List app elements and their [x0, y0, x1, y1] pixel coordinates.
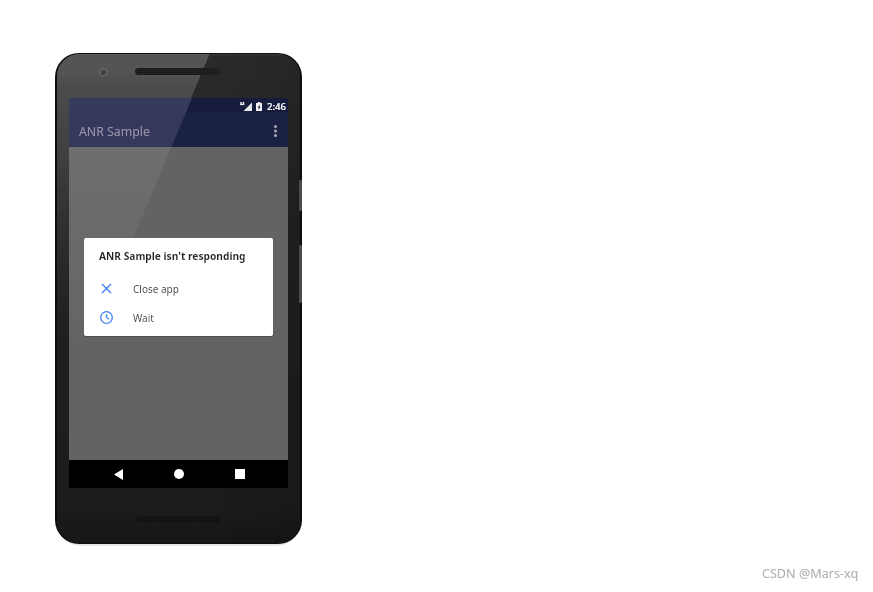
button[interactable]: Wait: [84, 303, 273, 332]
button[interactable]: Home: [161, 463, 197, 485]
staticText: Wait: [133, 311, 154, 325]
staticText: Close app: [133, 282, 179, 296]
staticText: ANR Sample isn't responding: [99, 249, 246, 263]
button[interactable]: More options: [263, 119, 287, 143]
button[interactable]: Close app: [84, 274, 273, 303]
staticText: 2:46: [267, 100, 287, 113]
button[interactable]: Recent apps: [222, 463, 258, 485]
button[interactable]: Back: [100, 463, 136, 485]
staticText: CSDN @Mars-xq: [762, 565, 859, 582]
staticText: ANR Sample: [79, 123, 150, 140]
